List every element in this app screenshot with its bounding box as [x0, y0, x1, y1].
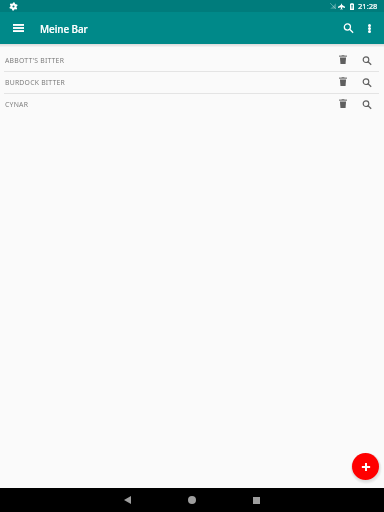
button[interactable]: Recents	[248, 492, 264, 508]
button[interactable]: Delete	[334, 94, 356, 115]
button[interactable]: Menu	[8, 18, 28, 38]
button[interactable]: More options	[357, 16, 381, 40]
staticText: CYNAR	[5, 100, 334, 109]
staticText: ABBOTT'S BITTER	[5, 56, 334, 65]
button[interactable]: BURDOCK BITTER	[0, 72, 384, 93]
button[interactable]: Delete	[334, 72, 356, 93]
staticText: BURDOCK BITTER	[5, 78, 334, 87]
staticText: Meine Bar	[40, 22, 88, 35]
button[interactable]: ABBOTT'S BITTER	[0, 50, 384, 71]
button[interactable]: Search	[333, 16, 357, 40]
button[interactable]: Add	[352, 453, 379, 480]
button[interactable]: Back	[119, 492, 135, 508]
button[interactable]: CYNAR	[0, 94, 384, 115]
button[interactable]: Home	[184, 492, 200, 508]
button[interactable]: Search	[356, 94, 378, 115]
staticText: 21:28	[358, 1, 378, 11]
button[interactable]: Delete	[334, 50, 356, 71]
button[interactable]: Search	[356, 72, 378, 93]
button[interactable]: Search	[356, 50, 378, 71]
